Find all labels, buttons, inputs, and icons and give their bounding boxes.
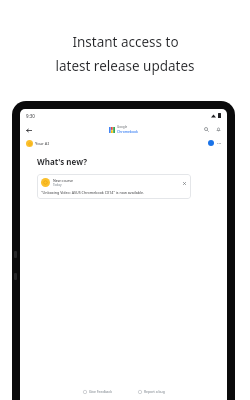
staticText: ••• (217, 141, 222, 146)
staticText: New course (53, 178, 74, 183)
button[interactable]: Report a bug (137, 388, 166, 395)
staticText: Chromebook (117, 129, 139, 134)
staticText: Give Feedback (89, 389, 112, 394)
button[interactable]: New course (37, 174, 191, 199)
staticText: Google (117, 125, 128, 129)
button[interactable]: Your AI (25, 139, 50, 148)
staticText: Today (53, 183, 62, 187)
button[interactable]: Search (202, 125, 211, 134)
staticText: "Unboxing Video: ASUS Chromebook CX14" i… (41, 190, 144, 195)
staticText: 9:30 (26, 113, 35, 119)
staticText: latest release updates (55, 57, 195, 75)
staticText: Your AI (35, 141, 49, 146)
staticText: Report a bug (144, 389, 165, 394)
staticText: Instant access to (72, 33, 179, 51)
button[interactable]: Account (208, 140, 214, 146)
button[interactable]: Give Feedback (82, 388, 113, 395)
button[interactable]: Back (24, 125, 34, 135)
button[interactable]: Notifications (214, 125, 223, 134)
button[interactable]: Dismiss (181, 180, 187, 186)
staticText: What's new? (37, 156, 87, 167)
